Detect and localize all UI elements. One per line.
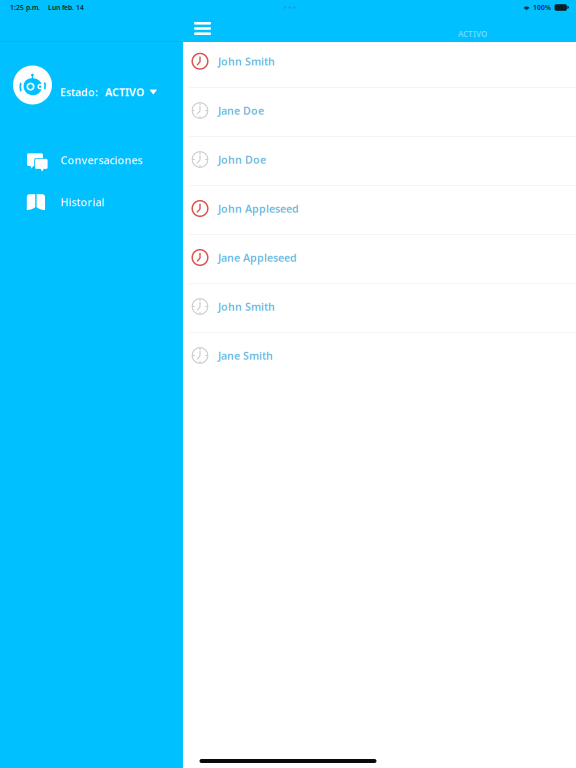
staticText: John Doe	[218, 152, 266, 167]
staticText: Jane Doe	[218, 103, 264, 118]
staticText: ACTIVO	[105, 85, 144, 99]
staticText: ACTIVO	[458, 29, 487, 39]
staticText: John Smith	[218, 299, 275, 314]
staticText: Lun feb. 14	[48, 3, 84, 12]
staticText: 1:25 p.m.	[10, 3, 40, 12]
button[interactable]: Jane Smith	[183, 333, 576, 381]
button[interactable]: Jane Appleseed	[183, 235, 576, 284]
button[interactable]: John Smith	[183, 284, 576, 333]
button[interactable]: Jane Doe	[183, 88, 576, 137]
staticText: Historial	[61, 195, 105, 209]
staticText: 100%	[533, 3, 551, 12]
button[interactable]: John Doe	[183, 137, 576, 186]
button[interactable]: Historial	[0, 185, 183, 219]
button[interactable]: ACTIVO	[105, 81, 157, 103]
button[interactable]: John Smith	[183, 42, 576, 88]
staticText: Conversaciones	[61, 153, 143, 167]
button[interactable]: Conversaciones	[0, 143, 183, 177]
staticText: Jane Appleseed	[218, 250, 297, 265]
button[interactable]: John Appleseed	[183, 186, 576, 235]
staticText: Jane Smith	[218, 348, 273, 363]
staticText: John Smith	[218, 54, 275, 68]
staticText: John Appleseed	[218, 201, 299, 216]
button[interactable]: Menu	[187, 15, 218, 41]
staticText: Estado:	[60, 85, 98, 99]
